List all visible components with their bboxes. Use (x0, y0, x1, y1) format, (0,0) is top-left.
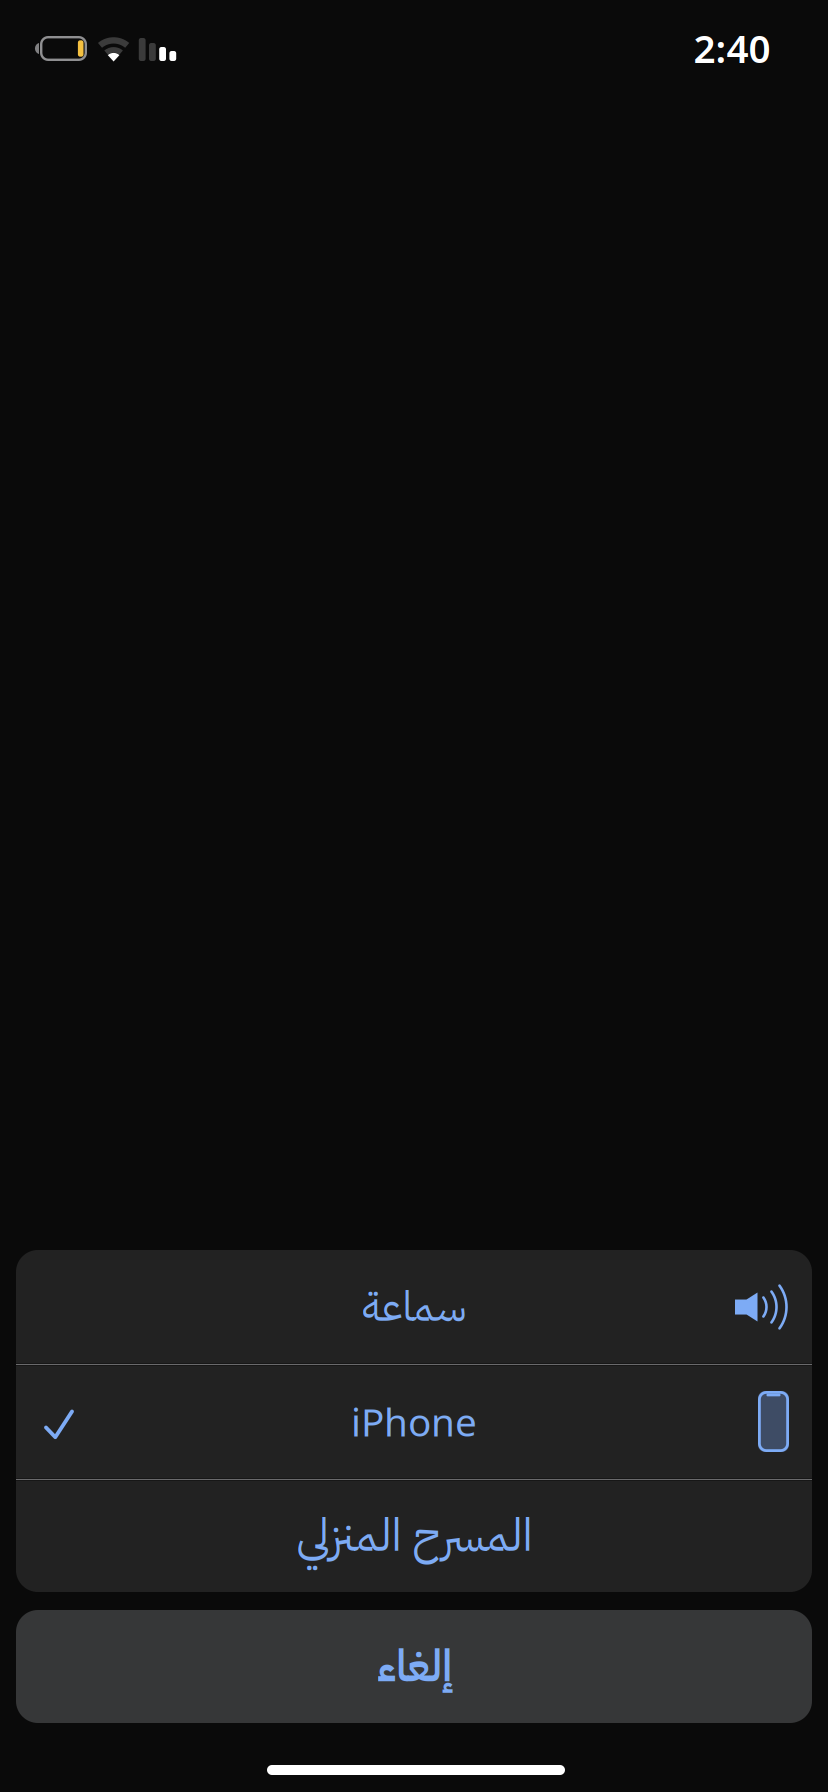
staticText: iPhone (351, 1396, 477, 1447)
button[interactable]: إلغاء (16, 1610, 812, 1723)
button[interactable]: سماعة (16, 1250, 812, 1364)
staticText: 2:40 (693, 22, 770, 74)
staticText: سماعة (362, 1276, 466, 1338)
staticText: المسرح المنزلي (296, 1501, 532, 1569)
button[interactable]: iPhone (16, 1364, 812, 1479)
staticText: إلغاء (376, 1633, 451, 1699)
button[interactable]: المسرح المنزلي (16, 1479, 812, 1592)
